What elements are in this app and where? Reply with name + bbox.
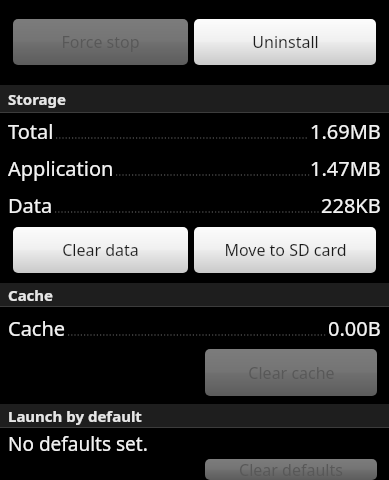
button[interactable]: Clear defaults bbox=[205, 459, 377, 480]
staticText: Launch by default bbox=[8, 406, 142, 426]
staticText: Application bbox=[8, 155, 114, 182]
staticText: Storage bbox=[8, 89, 66, 109]
staticText: No defaults set. bbox=[8, 431, 148, 457]
staticText: 228KB bbox=[321, 192, 381, 219]
staticText: Force stop bbox=[61, 31, 140, 53]
staticText: Clear cache bbox=[248, 362, 335, 384]
staticText: 1.47MB bbox=[310, 155, 381, 182]
button[interactable]: Clear data bbox=[13, 227, 188, 273]
staticText: Clear data bbox=[62, 239, 139, 261]
staticText: Uninstall bbox=[252, 31, 319, 53]
button[interactable]: Uninstall bbox=[194, 19, 376, 65]
staticText: Total bbox=[8, 118, 54, 145]
button[interactable]: Move to SD card bbox=[194, 227, 376, 273]
staticText: 0.00B bbox=[328, 315, 381, 342]
staticText: 1.69MB bbox=[310, 118, 381, 145]
staticText: Clear defaults bbox=[239, 459, 343, 480]
staticText: Cache bbox=[8, 285, 54, 305]
button[interactable]: Application bbox=[0, 150, 389, 187]
staticText: Move to SD card bbox=[224, 239, 347, 261]
button[interactable]: Data bbox=[0, 187, 389, 224]
button[interactable]: Force stop bbox=[13, 19, 188, 65]
staticText: Cache bbox=[8, 315, 66, 342]
staticText: Data bbox=[8, 192, 53, 219]
button[interactable]: Cache bbox=[0, 307, 389, 349]
button[interactable]: Clear cache bbox=[205, 349, 377, 396]
button[interactable]: Total bbox=[0, 113, 389, 150]
